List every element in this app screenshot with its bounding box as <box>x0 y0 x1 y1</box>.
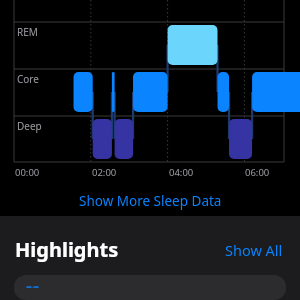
button[interactable]: Breathing Disturbances <box>14 275 286 300</box>
staticText: REM <box>17 25 38 39</box>
staticText: 04:00 <box>169 166 194 179</box>
staticText: 02:00 <box>92 166 117 179</box>
staticText: Show All <box>225 240 283 260</box>
staticText: Core <box>17 72 39 86</box>
staticText: Show More Sleep Data <box>79 192 222 210</box>
staticText: 00:00 <box>15 166 40 179</box>
staticText: 06:00 <box>245 166 270 179</box>
other: Breathing Disturbances <box>26 286 39 288</box>
staticText: Deep <box>17 119 42 133</box>
button[interactable]: Show More Sleep Data <box>0 190 300 212</box>
staticText: Highlights <box>15 236 119 263</box>
button[interactable]: Show All <box>223 238 285 262</box>
